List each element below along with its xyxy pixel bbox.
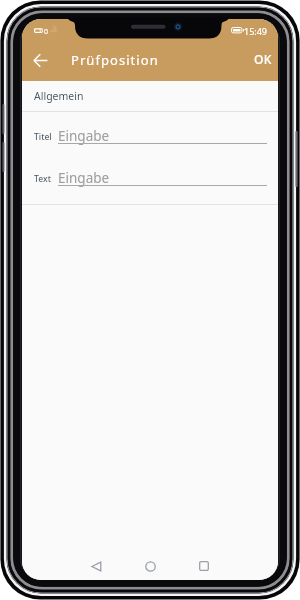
staticText: Text xyxy=(34,173,51,185)
button[interactable]: Text xyxy=(22,154,278,196)
staticText: Eingabe xyxy=(58,169,110,187)
staticText: 15:49 xyxy=(244,25,268,37)
button[interactable]: Startbildschirm xyxy=(136,552,164,580)
button[interactable]: Titel xyxy=(22,112,278,154)
button[interactable]: Übersicht xyxy=(190,552,218,580)
staticText: Allgemein xyxy=(34,89,84,103)
button[interactable]: Zurück xyxy=(82,552,110,580)
staticText: 0 xyxy=(44,27,49,37)
staticText: Titel xyxy=(34,131,52,143)
button[interactable]: OK xyxy=(242,43,278,80)
staticText: Prüfposition xyxy=(71,51,159,69)
staticText: OK xyxy=(254,51,272,67)
button[interactable]: Zurück xyxy=(25,43,55,77)
staticText: Eingabe xyxy=(58,127,110,145)
button[interactable]: Allgemein xyxy=(22,81,278,111)
